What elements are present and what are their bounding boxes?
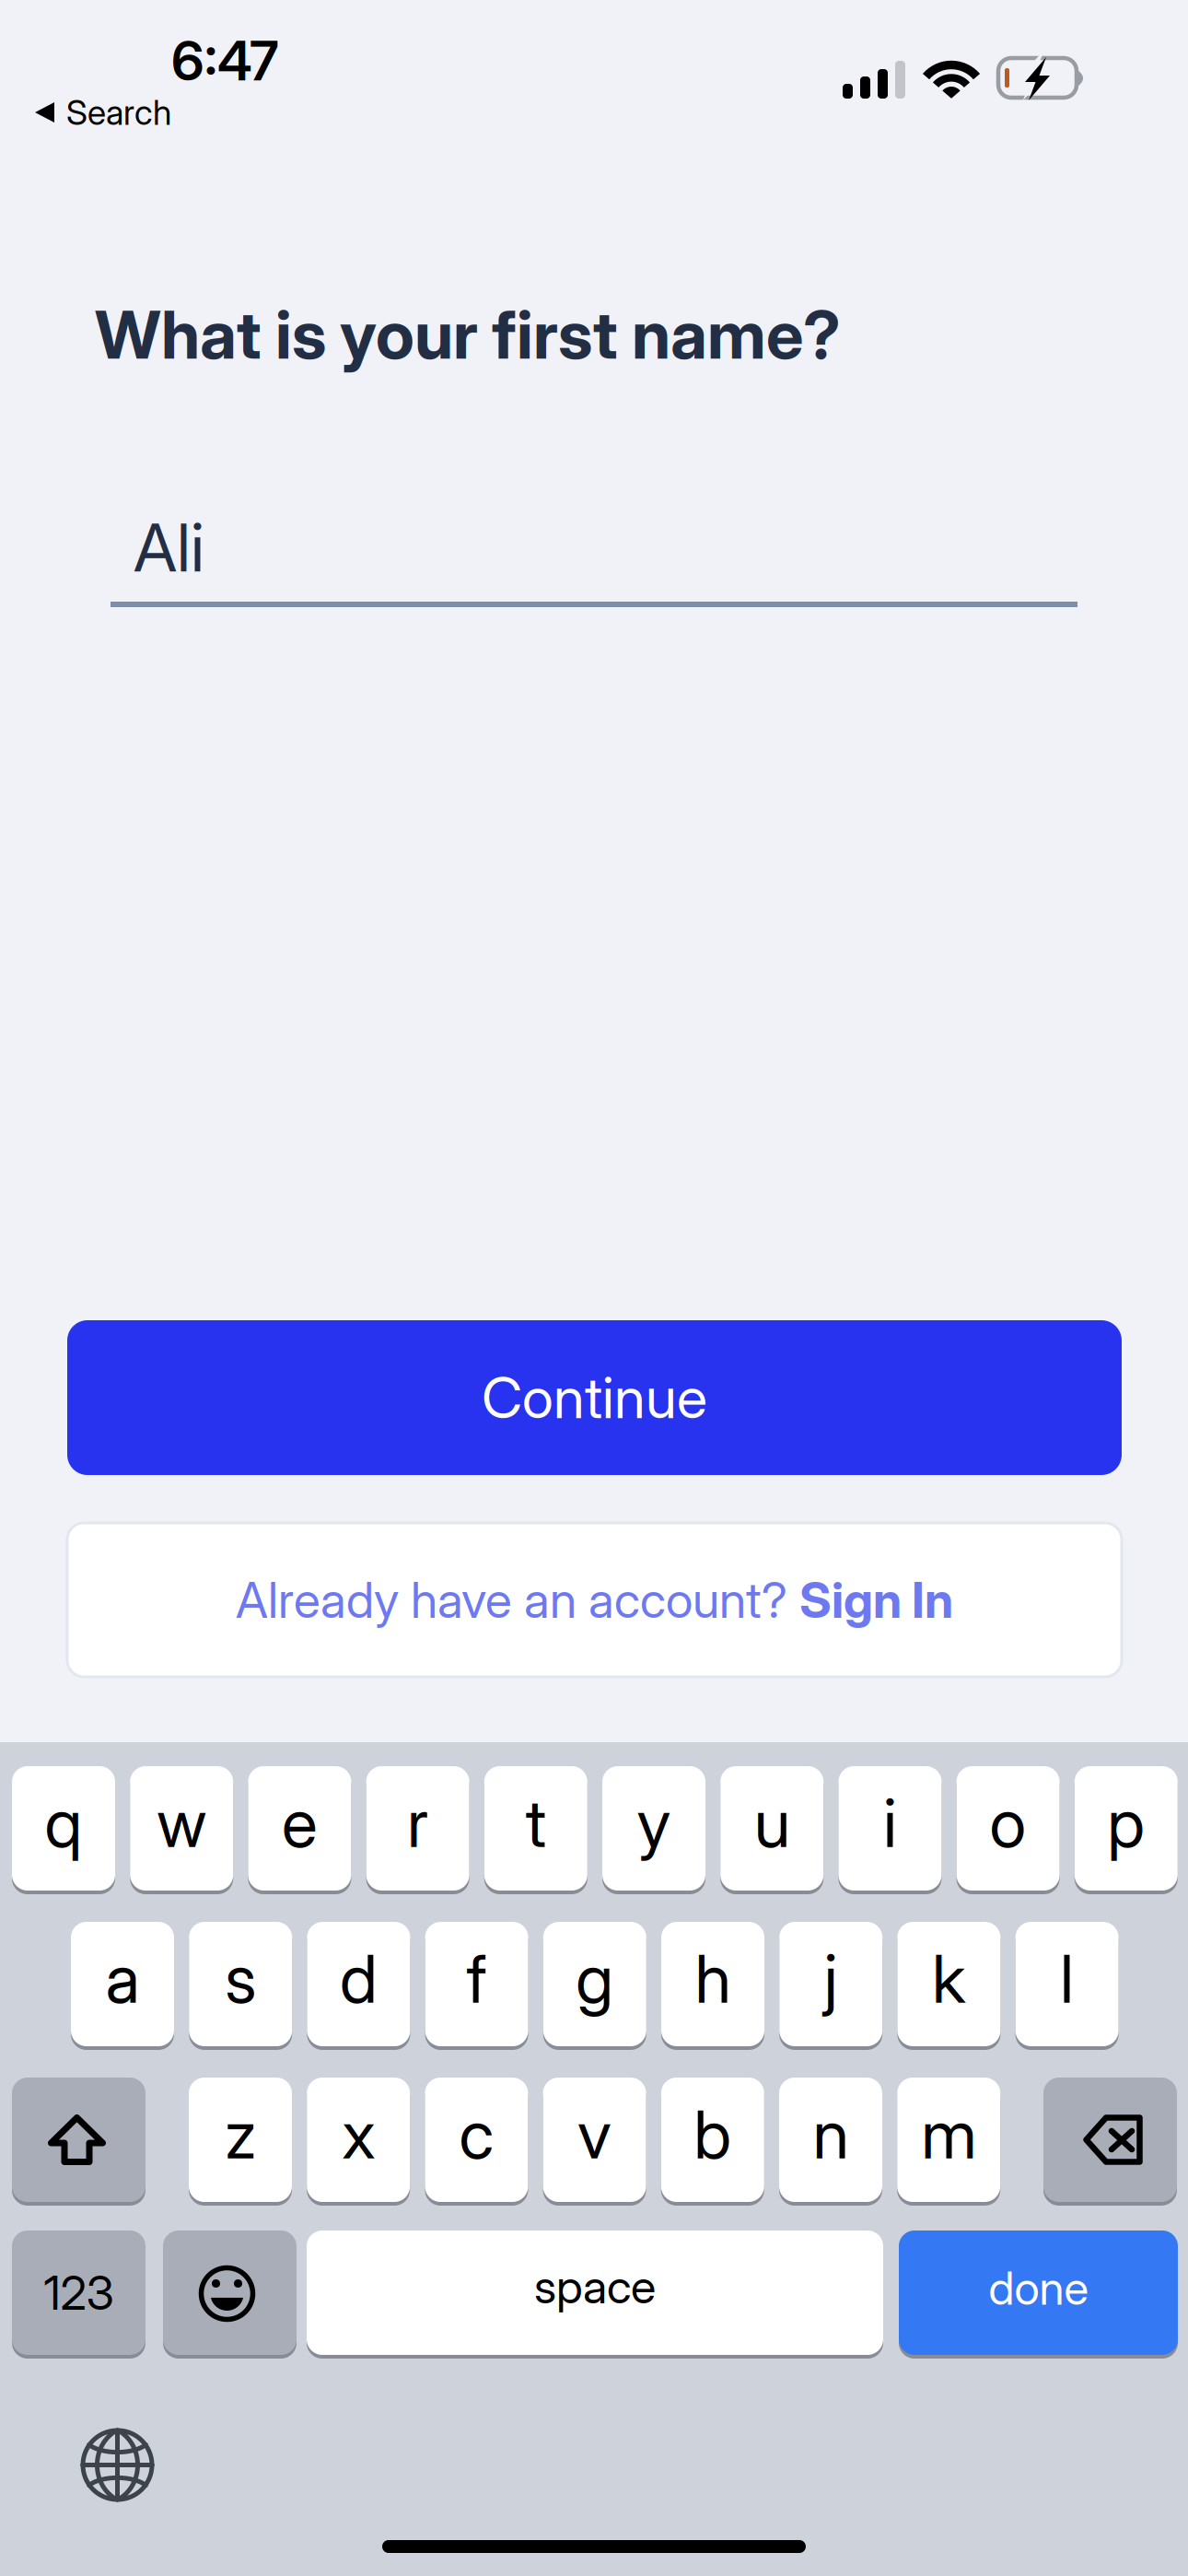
staticText: space: [534, 2258, 656, 2314]
staticText: e: [282, 1783, 318, 1863]
button[interactable]: space: [307, 2231, 883, 2359]
staticText: t: [526, 1783, 546, 1863]
staticText: done: [989, 2261, 1088, 2316]
staticText: Already have an account?: [236, 1570, 799, 1630]
button[interactable]: Search: [26, 90, 339, 135]
button[interactable]: Shift: [12, 2078, 146, 2206]
button[interactable]: i: [838, 1766, 942, 1894]
staticText: q: [45, 1783, 82, 1863]
staticText: w: [157, 1783, 206, 1863]
staticText: b: [694, 2094, 731, 2174]
staticText: a: [105, 1938, 140, 2019]
staticText: What is your first name?: [95, 294, 841, 375]
staticText: u: [754, 1783, 790, 1863]
button[interactable]: k: [897, 1922, 1000, 2050]
button[interactable]: 123: [12, 2231, 146, 2359]
button[interactable]: j: [779, 1922, 882, 2050]
button[interactable]: l: [1015, 1922, 1119, 2050]
button[interactable]: a: [71, 1922, 174, 2050]
button[interactable]: o: [956, 1766, 1060, 1894]
staticText: i: [883, 1783, 897, 1863]
staticText: Continue: [482, 1363, 707, 1432]
staticText: 6:47: [171, 28, 279, 94]
staticText: o: [990, 1783, 1026, 1863]
staticText: x: [342, 2094, 375, 2174]
button[interactable]: z: [189, 2078, 292, 2206]
staticText: c: [459, 2094, 494, 2174]
button[interactable]: s: [189, 1922, 292, 2050]
button[interactable]: v: [543, 2078, 646, 2206]
staticText: n: [813, 2094, 849, 2174]
button[interactable]: c: [425, 2078, 528, 2206]
button[interactable]: g: [543, 1922, 646, 2050]
button[interactable]: done: [899, 2231, 1178, 2359]
staticText: v: [578, 2094, 612, 2174]
staticText: Ali: [134, 507, 204, 587]
button[interactable]: w: [130, 1766, 233, 1894]
staticText: z: [225, 2094, 256, 2174]
button[interactable]: u: [720, 1766, 823, 1894]
staticText: y: [637, 1783, 671, 1863]
staticText: m: [921, 2094, 976, 2174]
staticText: k: [932, 1938, 966, 2019]
button[interactable]: q: [12, 1766, 115, 1894]
staticText: f: [467, 1938, 487, 2019]
button[interactable]: p: [1075, 1766, 1178, 1894]
button[interactable]: x: [307, 2078, 410, 2206]
staticText: p: [1107, 1783, 1145, 1863]
button[interactable]: Emoji keyboard: [163, 2231, 297, 2359]
button[interactable]: First name: [111, 498, 1077, 607]
staticText: h: [695, 1938, 731, 2019]
staticText: d: [340, 1938, 377, 2019]
staticText: 123: [44, 2264, 114, 2321]
staticText: s: [225, 1938, 256, 2019]
button[interactable]: d: [307, 1922, 410, 2050]
button[interactable]: r: [366, 1766, 469, 1894]
button[interactable]: f: [425, 1922, 528, 2050]
button[interactable]: e: [248, 1766, 351, 1894]
button[interactable]: n: [779, 2078, 882, 2206]
staticText: g: [576, 1938, 614, 2019]
staticText: Sign In: [799, 1570, 953, 1630]
button[interactable]: m: [897, 2078, 1000, 2206]
button[interactable]: Delete: [1043, 2078, 1177, 2206]
button[interactable]: b: [661, 2078, 764, 2206]
button[interactable]: y: [602, 1766, 705, 1894]
button[interactable]: Next keyboard: [80, 2428, 155, 2502]
staticText: Search: [66, 92, 171, 133]
button[interactable]: Continue: [67, 1320, 1122, 1475]
staticText: r: [407, 1783, 428, 1863]
staticText: l: [1060, 1938, 1074, 2019]
staticText: j: [824, 1938, 838, 2019]
button[interactable]: Already have an account?: [67, 1523, 1122, 1677]
button[interactable]: h: [661, 1922, 764, 2050]
button[interactable]: t: [484, 1766, 587, 1894]
